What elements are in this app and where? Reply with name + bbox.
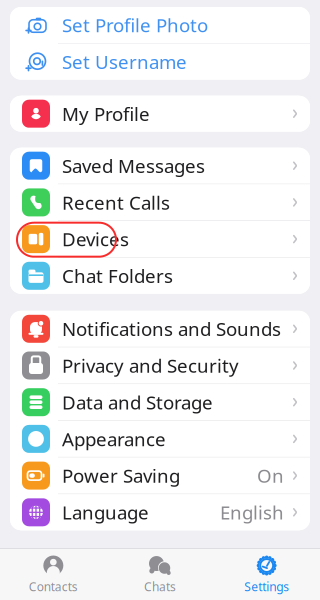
button[interactable]: Chat Folders [10, 258, 310, 294]
staticText: Contacts [29, 578, 78, 594]
button[interactable]: Set Profile Photo [10, 7, 310, 43]
staticText: Data and Storage [62, 390, 213, 415]
staticText: Set Profile Photo [62, 13, 208, 37]
staticText: Saved Messages [62, 153, 205, 178]
button[interactable]: Saved Messages [10, 148, 310, 184]
button[interactable]: Recent Calls [10, 184, 310, 220]
staticText: My Profile [62, 101, 150, 126]
button[interactable]: Privacy and Security [10, 347, 310, 383]
staticText: Power Saving [62, 463, 180, 488]
staticText: English [220, 500, 284, 525]
button[interactable]: Power Saving [10, 458, 310, 494]
staticText: Privacy and Security [62, 353, 239, 378]
staticText: On [257, 463, 284, 488]
staticText: Chat Folders [62, 263, 173, 288]
staticText: Language [62, 500, 149, 525]
staticText: Set Username [62, 49, 187, 74]
staticText: Appearance [62, 426, 166, 451]
button[interactable]: Devices [10, 221, 310, 257]
button[interactable]: Appearance [10, 421, 310, 457]
staticText: Notifications and Sounds [62, 316, 281, 341]
staticText: Devices [62, 227, 129, 251]
button[interactable]: Data and Storage [10, 384, 310, 420]
button[interactable]: My Profile [10, 96, 310, 132]
button[interactable]: Notifications and Sounds [10, 311, 310, 347]
staticText: Recent Calls [62, 190, 170, 215]
button[interactable]: Contacts [0, 551, 107, 597]
button[interactable]: Chats [107, 551, 213, 597]
button[interactable]: Language [10, 494, 310, 530]
staticText: Chats [144, 578, 176, 594]
staticText: Settings [244, 578, 289, 594]
button[interactable]: Set Username [10, 44, 310, 80]
button[interactable]: Settings [213, 551, 320, 597]
